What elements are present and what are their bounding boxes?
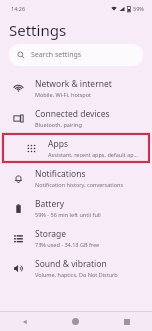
button[interactable]: Sound & vibration: [0, 253, 152, 283]
staticText: Mobile, Wi-Fi, hotspot: [35, 91, 92, 98]
staticText: Bluetooth, pairing: [35, 121, 82, 128]
staticText: Battery: [35, 198, 65, 210]
staticText: Sound & vibration: [35, 258, 107, 270]
staticText: 59% - 56 min left until full: [35, 211, 101, 218]
staticText: 14:26: [11, 5, 26, 12]
staticText: Network & internet: [35, 78, 112, 90]
button[interactable]: Back: [0, 312, 50, 331]
staticText: 73% used - 34.13 GB free: [35, 241, 100, 248]
staticText: 59%: [133, 5, 144, 12]
staticText: Notification history, conversations: [35, 181, 124, 188]
button[interactable]: Battery: [0, 193, 152, 223]
button[interactable]: Storage: [0, 223, 152, 253]
button[interactable]: Connected devices: [0, 103, 152, 133]
button[interactable]: Recent apps: [101, 312, 152, 331]
button[interactable]: Network & internet: [0, 73, 152, 103]
staticText: Apps: [48, 138, 68, 150]
staticText: Volume, haptics, Do Not Disturb: [35, 271, 118, 278]
staticText: Assistant, recent apps, default apps: [48, 151, 139, 158]
staticText: Settings: [9, 20, 67, 40]
button[interactable]: Home: [50, 312, 101, 331]
button[interactable]: Search settings: [9, 44, 143, 66]
staticText: Storage: [35, 228, 67, 240]
staticText: Notifications: [35, 168, 86, 180]
button[interactable]: Notifications: [0, 163, 152, 193]
staticText: Search settings: [31, 50, 82, 60]
button[interactable]: Apps: [3, 134, 149, 162]
staticText: Connected devices: [35, 108, 110, 120]
